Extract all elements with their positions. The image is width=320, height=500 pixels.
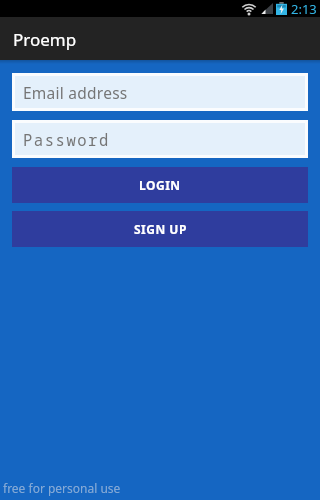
staticText: Email address	[23, 82, 128, 103]
staticText: LOGIN	[139, 177, 181, 193]
button[interactable]: LOGIN	[12, 167, 308, 203]
button[interactable]: Email address	[15, 76, 305, 108]
staticText: Proemp	[13, 28, 77, 51]
staticText: free for personal use	[3, 480, 121, 496]
button[interactable]: Password	[15, 123, 305, 155]
staticText: Password	[23, 129, 110, 150]
staticText: SIGN UP	[134, 221, 187, 237]
button[interactable]: SIGN UP	[12, 211, 308, 247]
staticText: 2:13	[291, 0, 317, 17]
